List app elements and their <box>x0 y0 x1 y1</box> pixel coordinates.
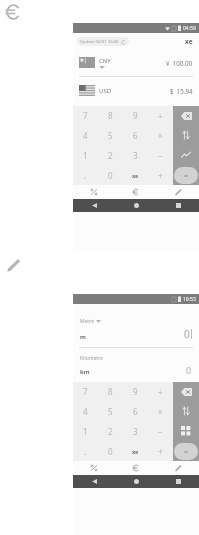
button[interactable]: Kilometre <box>73 355 199 376</box>
staticText: m <box>80 333 86 341</box>
staticText: . <box>84 170 87 181</box>
staticText: ¥ 100.00 <box>166 59 193 67</box>
button[interactable]: 5 <box>98 125 123 145</box>
staticText: 4 <box>83 130 88 141</box>
button[interactable]: Home <box>115 475 157 488</box>
button[interactable]: 7 <box>73 106 98 125</box>
button[interactable]: Swap <box>173 401 199 421</box>
staticText: 8 <box>108 110 113 121</box>
button[interactable]: 0 <box>98 165 123 185</box>
button[interactable]: Back <box>73 475 115 488</box>
button[interactable]: xe <box>123 441 148 461</box>
staticText: 10:53 <box>183 296 196 303</box>
button[interactable]: − <box>148 145 173 165</box>
staticText: 8 <box>108 386 113 397</box>
staticText: km <box>80 368 90 376</box>
button[interactable]: 9 <box>123 106 148 125</box>
button[interactable]: ÷ <box>148 106 173 125</box>
button[interactable]: Recents <box>157 475 199 488</box>
button[interactable]: Chart <box>173 145 199 165</box>
button[interactable]: 7 <box>73 382 98 401</box>
staticText: = <box>184 171 189 181</box>
button[interactable]: Currency <box>115 185 157 199</box>
button[interactable]: Update 04/01 16:00 <box>77 37 129 46</box>
staticText: Kilometre <box>80 355 103 362</box>
button[interactable]: Recents <box>157 199 199 212</box>
staticText: xe <box>132 448 139 455</box>
staticText: 7 <box>83 110 88 121</box>
staticText: 2 <box>108 426 113 437</box>
staticText: 1 <box>83 150 88 161</box>
button[interactable]: xe <box>123 165 148 185</box>
button[interactable]: ÷ <box>148 382 173 401</box>
button[interactable]: Calculator <box>73 185 115 199</box>
staticText: ÷ <box>158 386 163 397</box>
button[interactable]: 3 <box>123 145 148 165</box>
button[interactable]: 2 <box>98 421 123 441</box>
staticText: Metre <box>80 318 94 325</box>
staticText: 3 <box>133 150 138 161</box>
staticText: 0 <box>108 170 113 181</box>
staticText: 3 <box>133 426 138 437</box>
button[interactable]: Units <box>157 461 199 475</box>
other: Unit converter <box>5 257 21 273</box>
button[interactable]: 4 <box>73 401 98 421</box>
other: Currency converter <box>4 3 22 21</box>
button[interactable]: 3 <box>123 421 148 441</box>
button[interactable]: − <box>148 421 173 441</box>
button[interactable]: Delete <box>173 106 199 125</box>
staticText: 6 <box>133 406 138 417</box>
button[interactable]: 8 <box>98 382 123 401</box>
staticText: USD <box>99 87 112 95</box>
button[interactable]: 5 <box>98 401 123 421</box>
staticText: − <box>158 150 163 161</box>
staticText: 9 <box>133 386 138 397</box>
button[interactable]: 9 <box>123 382 148 401</box>
button[interactable]: 4 <box>73 125 98 145</box>
staticText: 0 <box>186 364 192 376</box>
staticText: 04:59 <box>183 25 196 32</box>
button[interactable]: Keypad <box>173 421 199 441</box>
staticText: Update 04/01 16:00 <box>80 39 119 45</box>
button[interactable]: 0 <box>98 441 123 461</box>
button[interactable]: xe <box>185 37 193 46</box>
button[interactable]: × <box>148 401 173 421</box>
button[interactable]: Calculator <box>73 461 115 475</box>
button[interactable]: Metre <box>73 318 199 341</box>
button[interactable]: 1 <box>73 145 98 165</box>
button[interactable]: + <box>148 165 173 185</box>
staticText: × <box>158 406 163 417</box>
staticText: xe <box>185 37 193 46</box>
button[interactable]: × <box>148 125 173 145</box>
button[interactable]: 8 <box>98 106 123 125</box>
staticText: 6 <box>133 130 138 141</box>
staticText: + <box>158 170 163 181</box>
staticText: 9 <box>133 110 138 121</box>
staticText: 5 <box>108 130 113 141</box>
button[interactable]: 2 <box>98 145 123 165</box>
button[interactable]: + <box>148 441 173 461</box>
button[interactable]: = <box>174 167 198 184</box>
button[interactable]: Back <box>73 199 115 212</box>
button[interactable]: USD <box>73 77 199 104</box>
staticText: = <box>184 447 189 457</box>
button[interactable]: 6 <box>123 401 148 421</box>
button[interactable]: = <box>174 443 198 460</box>
button[interactable]: Home <box>115 199 157 212</box>
staticText: 7 <box>83 386 88 397</box>
button[interactable]: Currency <box>115 461 157 475</box>
button[interactable]: Swap <box>173 125 199 145</box>
button[interactable]: Delete <box>173 382 199 401</box>
button[interactable]: CNY <box>73 49 199 76</box>
staticText: − <box>158 426 163 437</box>
staticText: × <box>158 130 163 141</box>
staticText: xe <box>132 172 139 179</box>
button[interactable]: 6 <box>123 125 148 145</box>
staticText: 1 <box>83 426 88 437</box>
staticText: CNY <box>99 57 111 65</box>
button[interactable]: 1 <box>73 421 98 441</box>
staticText: 0 <box>184 327 190 341</box>
button[interactable]: Units <box>157 185 199 199</box>
